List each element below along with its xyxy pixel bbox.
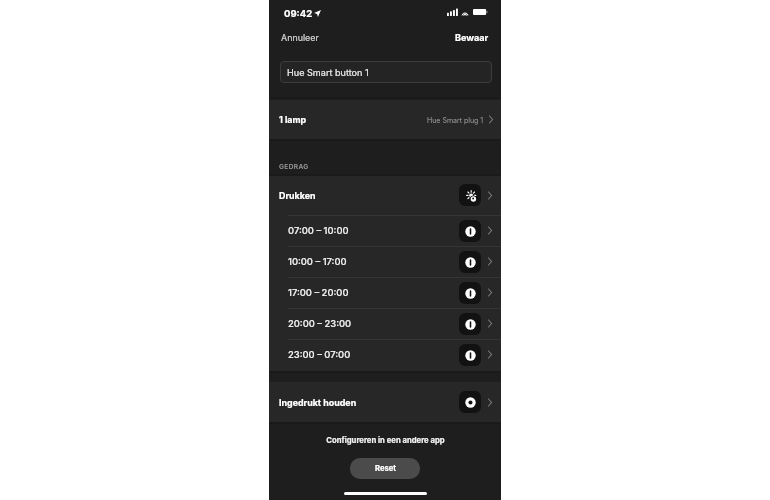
button[interactable]: Annuleer (276, 29, 324, 46)
staticText: 1 lamp (279, 114, 307, 125)
staticText: Configureren in een andere app (326, 436, 445, 445)
button[interactable]: 1 lamp (269, 100, 501, 139)
staticText: 20:00 – 23:00 (288, 318, 352, 329)
staticText: Ingedrukt houden (279, 397, 357, 408)
button[interactable]: 20:00 – 23:00 (269, 308, 501, 339)
button[interactable]: Bewaar (450, 29, 494, 46)
button[interactable]: 23:00 – 07:00 (269, 339, 501, 370)
button[interactable]: Dim light (459, 344, 481, 366)
staticText: 09:42 (284, 8, 313, 19)
button[interactable]: Dim light (459, 220, 481, 242)
staticText: Drukken (279, 190, 316, 201)
button[interactable]: Reset (350, 458, 420, 479)
button[interactable]: Dim light (459, 251, 481, 273)
staticText: 10:00 – 17:00 (288, 256, 347, 267)
button[interactable]: Hue Smart button 1 (280, 61, 492, 83)
button[interactable]: Dim light (459, 282, 481, 304)
staticText: 17:00 – 20:00 (288, 287, 349, 298)
button[interactable]: 10:00 – 17:00 (269, 246, 501, 277)
button[interactable]: Toggle light on or off (459, 391, 481, 413)
staticText: Reset (375, 464, 396, 473)
staticText: GEDRAG (279, 163, 309, 171)
button[interactable]: Configureren in een andere app (322, 434, 449, 447)
staticText: 07:00 – 10:00 (288, 225, 349, 236)
button[interactable]: 07:00 – 10:00 (269, 215, 501, 246)
button[interactable]: 17:00 – 20:00 (269, 277, 501, 308)
button[interactable]: Dim light (459, 313, 481, 335)
button[interactable]: Ingedrukt houden (269, 382, 501, 422)
staticText: Bewaar (455, 32, 489, 43)
staticText: Hue Smart button 1 (287, 67, 369, 78)
button[interactable]: Drukken (269, 175, 501, 215)
staticText: Annuleer (281, 32, 319, 43)
staticText: Hue Smart plug 1 (427, 116, 484, 124)
button[interactable]: Set scene brightness (459, 184, 481, 206)
staticText: 23:00 – 07:00 (288, 349, 351, 360)
